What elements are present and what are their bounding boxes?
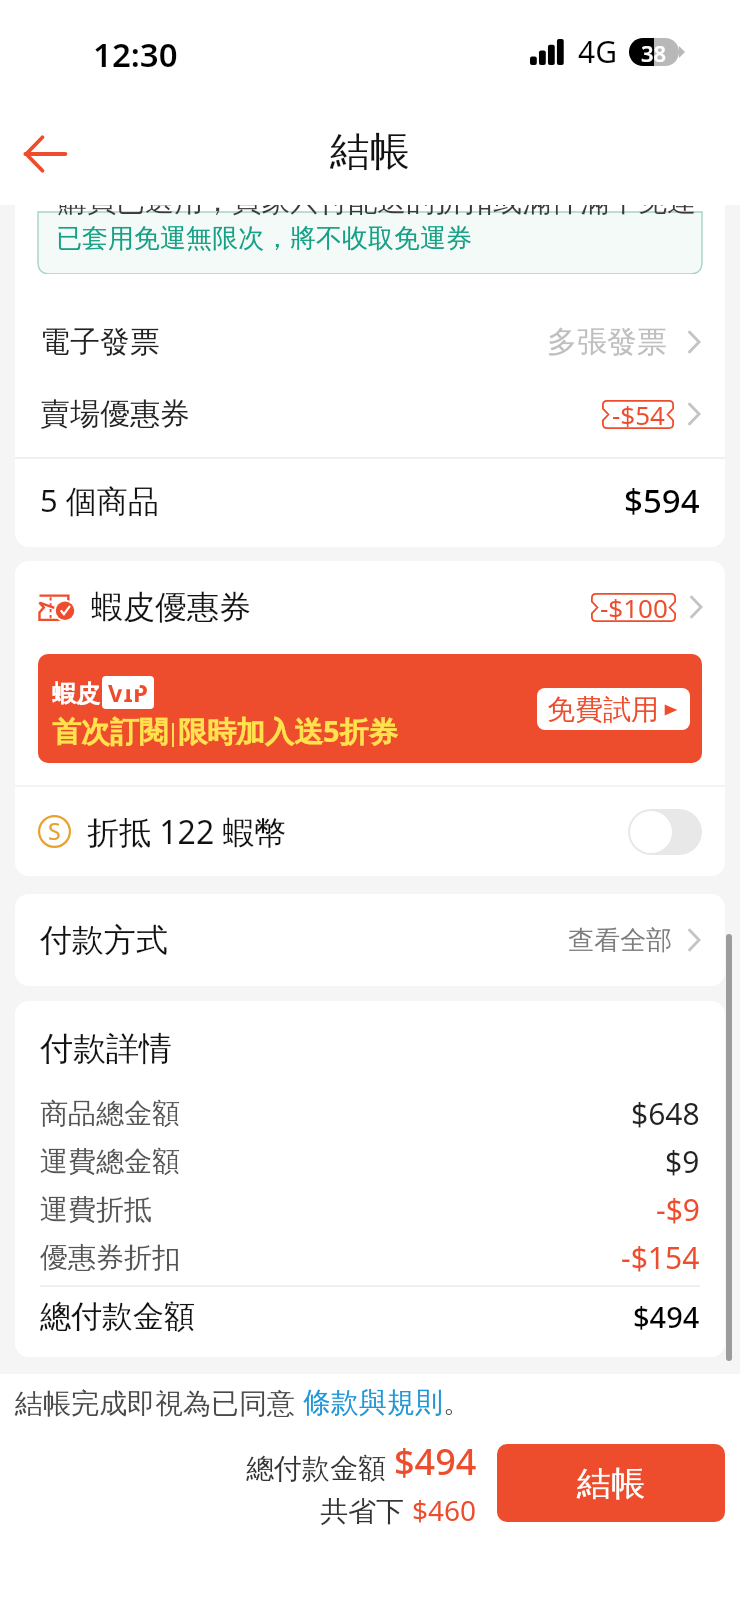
staticText: 總付款金額 — [40, 1297, 195, 1336]
button[interactable]: 蝦皮優惠券 — [38, 561, 702, 653]
staticText: 結帳完成即視為已同意 — [15, 1383, 303, 1421]
button[interactable]: Use Shopee coins — [628, 809, 702, 855]
button[interactable]: 條款與規則 — [303, 1385, 443, 1420]
button[interactable]: 蝦皮 — [38, 654, 702, 763]
staticText: $494 — [633, 1297, 700, 1336]
staticText: 蝦皮優惠券 — [91, 587, 251, 627]
staticText: 首次訂閱 — [52, 714, 168, 751]
staticText: 12:30 — [93, 32, 178, 77]
button[interactable]: 電子發票 — [40, 306, 700, 378]
staticText: 結帳 — [330, 126, 410, 176]
staticText: 。 — [443, 1385, 471, 1420]
staticText: 蝦皮 — [52, 679, 100, 709]
staticText: $9 — [665, 1141, 700, 1182]
staticText: 已套用免運無限次，將不收取免運券 — [56, 222, 472, 255]
staticText: 折抵 122 蝦幣 — [87, 810, 287, 854]
staticText: 查看全部 — [568, 924, 672, 957]
staticText: 4G — [578, 31, 617, 72]
button[interactable]: 賣場優惠券 — [40, 378, 700, 450]
staticText: 電子發票 — [40, 323, 160, 361]
staticText: 商品總金額 — [40, 1096, 180, 1131]
staticText: 共省下 — [320, 1491, 412, 1529]
staticText: 運費折抵 — [40, 1192, 152, 1227]
button[interactable]: 付款方式 — [40, 894, 700, 986]
staticText: $594 — [624, 478, 700, 523]
staticText: 免費試用 — [547, 692, 659, 727]
staticText: 付款方式 — [40, 920, 168, 960]
staticText: -$100 — [600, 590, 668, 625]
staticText: 限時加入送5折券 — [178, 711, 398, 751]
button[interactable]: Back — [12, 120, 80, 188]
staticText: 付款詳情 — [40, 1028, 172, 1070]
staticText: 多張發票 — [547, 323, 667, 361]
staticText: 優惠券折扣 — [40, 1240, 180, 1275]
staticText: 38 — [641, 38, 667, 66]
staticText: 結帳 — [577, 1462, 645, 1505]
staticText: 5 個商品 — [40, 479, 159, 521]
staticText: 運費總金額 — [40, 1144, 180, 1179]
staticText: 賣場優惠券 — [40, 395, 190, 433]
staticText: $460 — [412, 1491, 477, 1529]
staticText: 總付款金額 — [246, 1448, 394, 1486]
button[interactable]: 結帳 — [497, 1444, 725, 1522]
staticText: 購買已選用，買家只付配送的折扣或滿件滿千免運 — [58, 205, 696, 220]
button[interactable]: 免費試用 — [537, 688, 690, 730]
staticText: -$9 — [656, 1189, 700, 1230]
staticText: -$54 — [612, 397, 665, 432]
staticText: $494 — [394, 1437, 477, 1486]
staticText: S — [48, 815, 61, 846]
staticText: $648 — [631, 1093, 700, 1134]
staticText: VIP — [108, 676, 148, 709]
staticText: -$154 — [621, 1237, 700, 1278]
